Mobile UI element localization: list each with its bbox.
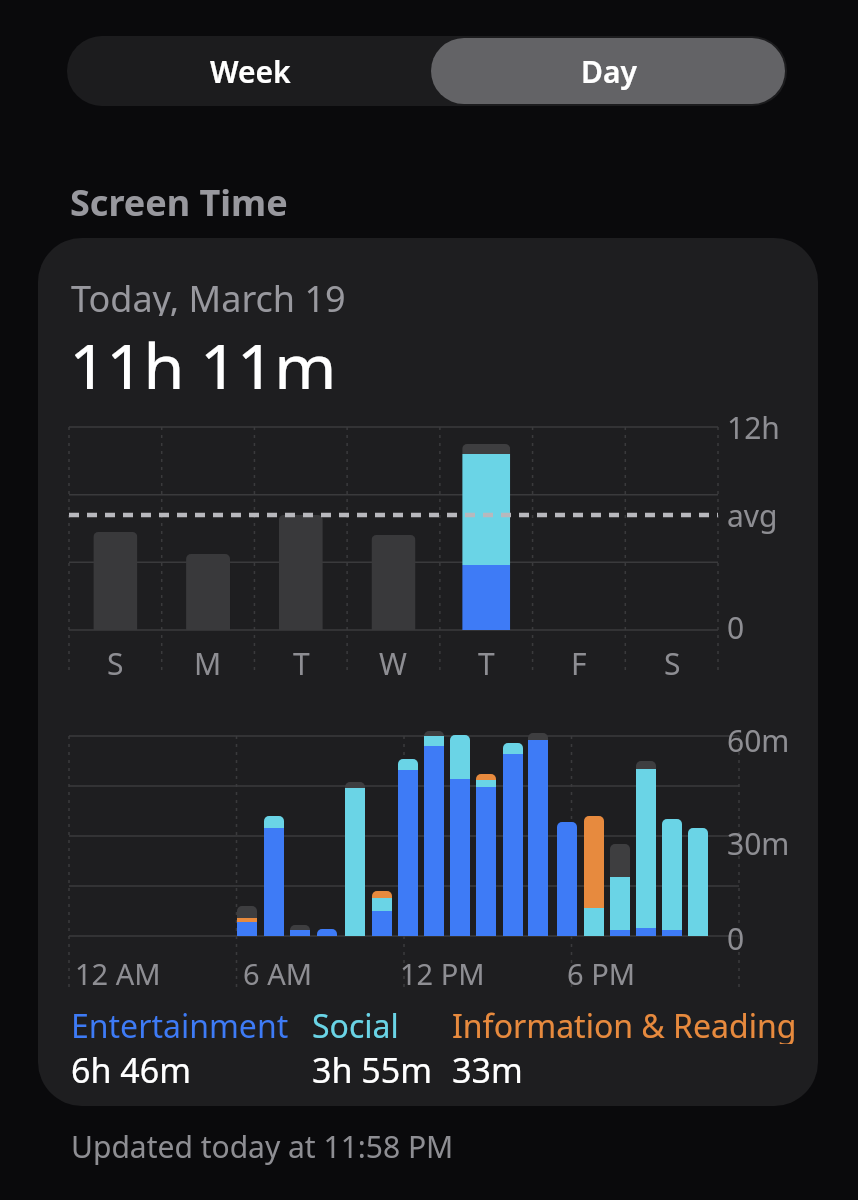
- staticText: Today, March 19: [71, 274, 346, 316]
- staticText: S: [107, 643, 124, 677]
- staticText: Information & Reading: [452, 1004, 797, 1044]
- staticText: 33m: [452, 1047, 523, 1089]
- staticText: Week: [210, 51, 291, 92]
- staticText: 0: [727, 918, 745, 958]
- staticText: S: [664, 643, 681, 677]
- staticText: 12 PM: [400, 954, 485, 993]
- staticText: 30m: [727, 823, 790, 863]
- staticText: Screen Time: [70, 178, 288, 224]
- staticText: T: [293, 643, 310, 677]
- staticText: M: [194, 643, 222, 677]
- staticText: 6 AM: [243, 954, 312, 993]
- staticText: T: [478, 643, 495, 677]
- staticText: 0: [727, 607, 745, 647]
- staticText: 6 PM: [567, 954, 635, 993]
- staticText: Entertainment: [71, 1004, 289, 1044]
- staticText: 11h 11m: [69, 321, 336, 389]
- staticText: avg: [727, 495, 778, 535]
- staticText: Updated today at 11:58 PM: [71, 1126, 454, 1166]
- button[interactable]: Day: [431, 36, 787, 106]
- staticText: 60m: [727, 720, 790, 760]
- staticText: 3h 55m: [312, 1047, 432, 1089]
- staticText: 12h: [727, 407, 780, 447]
- staticText: W: [379, 643, 407, 677]
- button[interactable]: Week: [67, 36, 433, 106]
- staticText: F: [571, 643, 587, 677]
- staticText: 12 AM: [75, 954, 161, 993]
- staticText: Day: [581, 51, 637, 92]
- staticText: Social: [312, 1004, 399, 1044]
- staticText: 6h 46m: [71, 1047, 191, 1089]
